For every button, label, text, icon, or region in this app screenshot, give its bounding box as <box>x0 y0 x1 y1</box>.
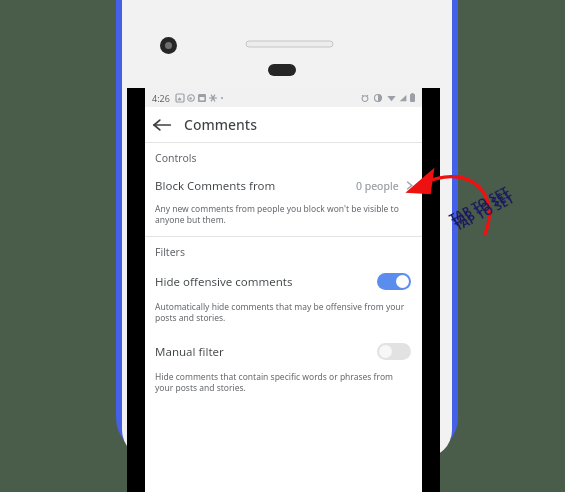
staticText: 4:26 <box>152 92 170 104</box>
staticText: Comments <box>184 115 257 134</box>
staticText: Block Comments from <box>155 178 276 194</box>
staticText: TAP TO SET <box>446 182 511 226</box>
button[interactable]: Back <box>145 108 179 142</box>
staticText: Filters <box>155 245 185 259</box>
button[interactable]: Block Comments from <box>145 172 422 199</box>
button[interactable]: Manual filter <box>145 336 422 367</box>
staticText: Hide offensive comments <box>155 274 293 290</box>
staticText: Automatically hide comments that may be … <box>155 301 406 323</box>
staticText: TAP TO SET <box>452 190 517 234</box>
staticText: Controls <box>155 151 197 165</box>
staticText: TAP TO SET <box>449 186 514 230</box>
staticText: Any new comments from people you block w… <box>155 203 406 225</box>
staticText: Manual filter <box>155 344 224 360</box>
staticText: Hide comments that contain specific word… <box>155 371 406 393</box>
button[interactable]: Hide offensive comments <box>145 266 422 297</box>
staticText: 0 people <box>356 179 399 193</box>
